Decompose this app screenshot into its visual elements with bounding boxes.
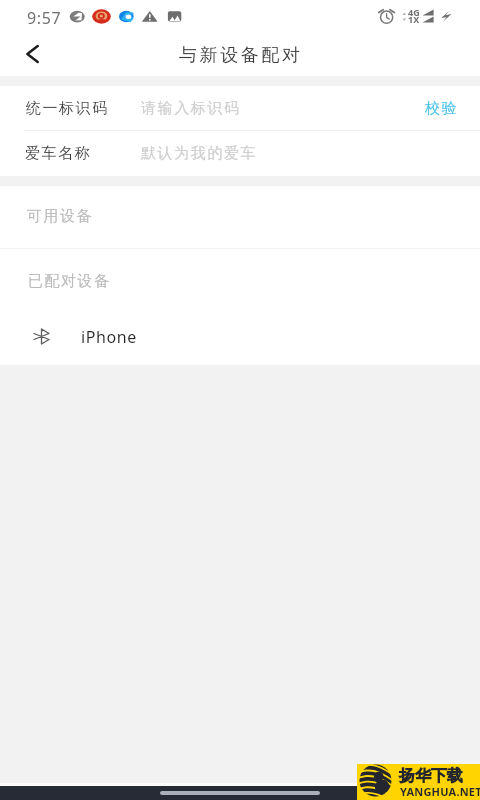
staticText: 可用设备 <box>27 207 94 226</box>
staticText: 默认为我的爱车 <box>141 144 258 163</box>
staticText: 统一标识码 <box>25 99 108 118</box>
button[interactable]: iPhone <box>0 307 480 365</box>
staticText: iPhone <box>81 326 137 348</box>
staticText: 与新设备配对 <box>179 44 303 67</box>
staticText: 已配对设备 <box>27 272 110 291</box>
staticText: 扬华下载 <box>399 766 463 786</box>
button[interactable]: 统一标识码 <box>0 86 480 130</box>
staticText: 1X <box>408 13 420 25</box>
button[interactable]: 校验 <box>411 86 480 130</box>
staticText: 9:57 <box>27 7 62 29</box>
staticText: 爱车名称 <box>25 144 92 163</box>
staticText: 请输入标识码 <box>141 99 241 118</box>
button[interactable]: Back <box>0 32 56 76</box>
staticText: YANGHUA.NET <box>400 784 480 799</box>
staticText: 4G <box>408 6 420 18</box>
button[interactable]: Home <box>160 791 320 795</box>
button[interactable]: 爱车名称 <box>0 131 480 176</box>
staticText: 校验 <box>425 99 459 118</box>
